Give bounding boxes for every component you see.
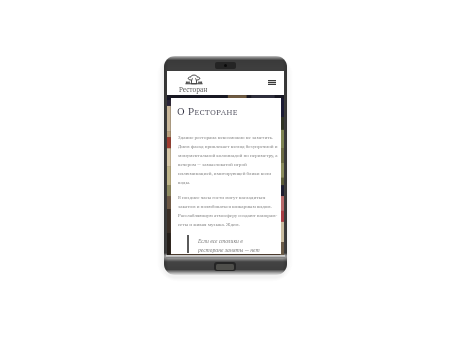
staticText: Ресторан xyxy=(179,85,208,94)
staticText: Здание ресторана невозможно не заметить.… xyxy=(178,134,278,185)
staticText: Если все столики в ресторане заняты — не… xyxy=(198,237,260,254)
staticText: В позднее часы гости могут насладиться з… xyxy=(178,194,278,227)
button[interactable]: Ресторан xyxy=(179,74,208,94)
staticText: О РЕСТОРАНЕ xyxy=(177,104,238,118)
button[interactable]: Меню xyxy=(265,76,279,89)
